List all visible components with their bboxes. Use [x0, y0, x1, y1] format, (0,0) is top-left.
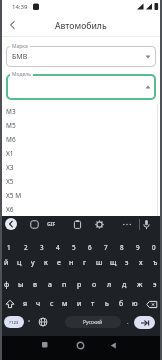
- button[interactable]: ъ: [148, 256, 162, 270]
- button[interactable]: ю: [128, 297, 142, 311]
- button[interactable]: 1: [0, 241, 17, 254]
- button[interactable]: [73, 220, 82, 229]
- button[interactable]: [6, 46, 156, 67]
- button[interactable]: [4, 17, 20, 33]
- staticText: Х6: [6, 205, 14, 214]
- staticText: з: [125, 258, 129, 268]
- button[interactable]: ж: [132, 278, 147, 292]
- staticText: ц: [17, 258, 22, 268]
- button[interactable]: и: [72, 297, 86, 311]
- button[interactable]: л: [102, 278, 117, 292]
- button[interactable]: 8: [114, 241, 130, 254]
- button[interactable]: щ: [106, 256, 120, 270]
- button[interactable]: Х3: [2, 160, 158, 174]
- button[interactable]: [122, 220, 132, 229]
- staticText: ш: [96, 258, 103, 268]
- staticText: 5: [72, 243, 76, 252]
- staticText: Автомобиль: [55, 20, 107, 32]
- staticText: к: [44, 258, 48, 268]
- button[interactable]: ш: [92, 256, 106, 270]
- staticText: ю: [132, 299, 138, 309]
- staticText: М3: [6, 107, 16, 116]
- staticText: 8: [120, 243, 124, 252]
- button[interactable]: а: [42, 278, 57, 292]
- staticText: 2: [24, 243, 28, 252]
- button[interactable]: 9: [130, 241, 146, 254]
- staticText: М6: [6, 135, 16, 144]
- button[interactable]: 4: [50, 241, 66, 254]
- button[interactable]: я: [19, 297, 32, 311]
- button[interactable]: М3: [2, 104, 158, 118]
- staticText: ь: [105, 299, 109, 309]
- button[interactable]: ы: [14, 278, 28, 292]
- button[interactable]: о: [87, 278, 102, 292]
- staticText: ф: [4, 280, 10, 290]
- staticText: щ: [110, 258, 117, 268]
- button[interactable]: [75, 340, 85, 350]
- button[interactable]: Х5: [2, 174, 158, 188]
- button[interactable]: н: [65, 256, 78, 270]
- staticText: Х3: [6, 163, 14, 172]
- button[interactable]: 3: [34, 241, 50, 254]
- button[interactable]: м: [58, 297, 72, 311]
- staticText: х: [139, 258, 143, 268]
- button[interactable]: з: [120, 256, 134, 270]
- button[interactable]: [30, 220, 39, 229]
- button[interactable]: у: [26, 256, 39, 270]
- button[interactable]: с: [45, 297, 58, 311]
- staticText: ы: [18, 280, 24, 290]
- staticText: М5: [6, 121, 16, 130]
- button[interactable]: г: [78, 256, 92, 270]
- button[interactable]: Х1: [2, 146, 158, 160]
- button[interactable]: д: [117, 278, 132, 292]
- button[interactable]: [38, 317, 48, 327]
- staticText: е: [57, 258, 61, 268]
- button[interactable]: 2: [17, 241, 34, 254]
- button[interactable]: й: [0, 256, 13, 270]
- button[interactable]: [142, 297, 162, 311]
- staticText: м: [62, 299, 68, 309]
- staticText: Русский: [83, 319, 103, 326]
- button[interactable]: ч: [32, 297, 45, 311]
- button[interactable]: [134, 316, 155, 329]
- staticText: GIF: [47, 221, 56, 228]
- button[interactable]: к: [39, 256, 52, 270]
- staticText: э: [153, 280, 157, 290]
- button[interactable]: р: [72, 278, 87, 292]
- staticText: г: [83, 258, 87, 268]
- staticText: о: [92, 280, 97, 290]
- button[interactable]: [5, 218, 17, 230]
- button[interactable]: 0: [146, 241, 162, 254]
- button[interactable]: 5: [66, 241, 82, 254]
- button[interactable]: 6: [82, 241, 98, 254]
- button[interactable]: 7: [98, 241, 114, 254]
- staticText: 0: [152, 243, 156, 252]
- button[interactable]: ф: [0, 278, 14, 292]
- button[interactable]: М6: [2, 132, 158, 146]
- button[interactable]: М5: [2, 118, 158, 132]
- button[interactable]: п: [57, 278, 72, 292]
- button[interactable]: т: [86, 297, 100, 311]
- button[interactable]: х: [134, 256, 148, 270]
- button[interactable]: Х5 М: [2, 188, 158, 202]
- button[interactable]: [40, 340, 50, 350]
- button[interactable]: [6, 74, 156, 100]
- button[interactable]: ь: [100, 297, 114, 311]
- staticText: Х1: [6, 149, 14, 158]
- button[interactable]: Русский: [65, 316, 121, 328]
- button[interactable]: э: [147, 278, 162, 292]
- button[interactable]: ?123: [4, 316, 24, 328]
- staticText: 4: [56, 243, 60, 252]
- staticText: п: [62, 280, 67, 290]
- button[interactable]: [0, 297, 19, 311]
- button[interactable]: б: [114, 297, 128, 311]
- button[interactable]: ц: [13, 256, 26, 270]
- button[interactable]: Х6: [2, 202, 158, 216]
- button[interactable]: [108, 340, 118, 350]
- button[interactable]: [95, 220, 104, 229]
- button[interactable]: в: [28, 278, 42, 292]
- staticText: 3: [40, 243, 44, 252]
- button[interactable]: [142, 219, 151, 231]
- button[interactable]: е: [52, 256, 65, 270]
- staticText: н: [69, 258, 74, 268]
